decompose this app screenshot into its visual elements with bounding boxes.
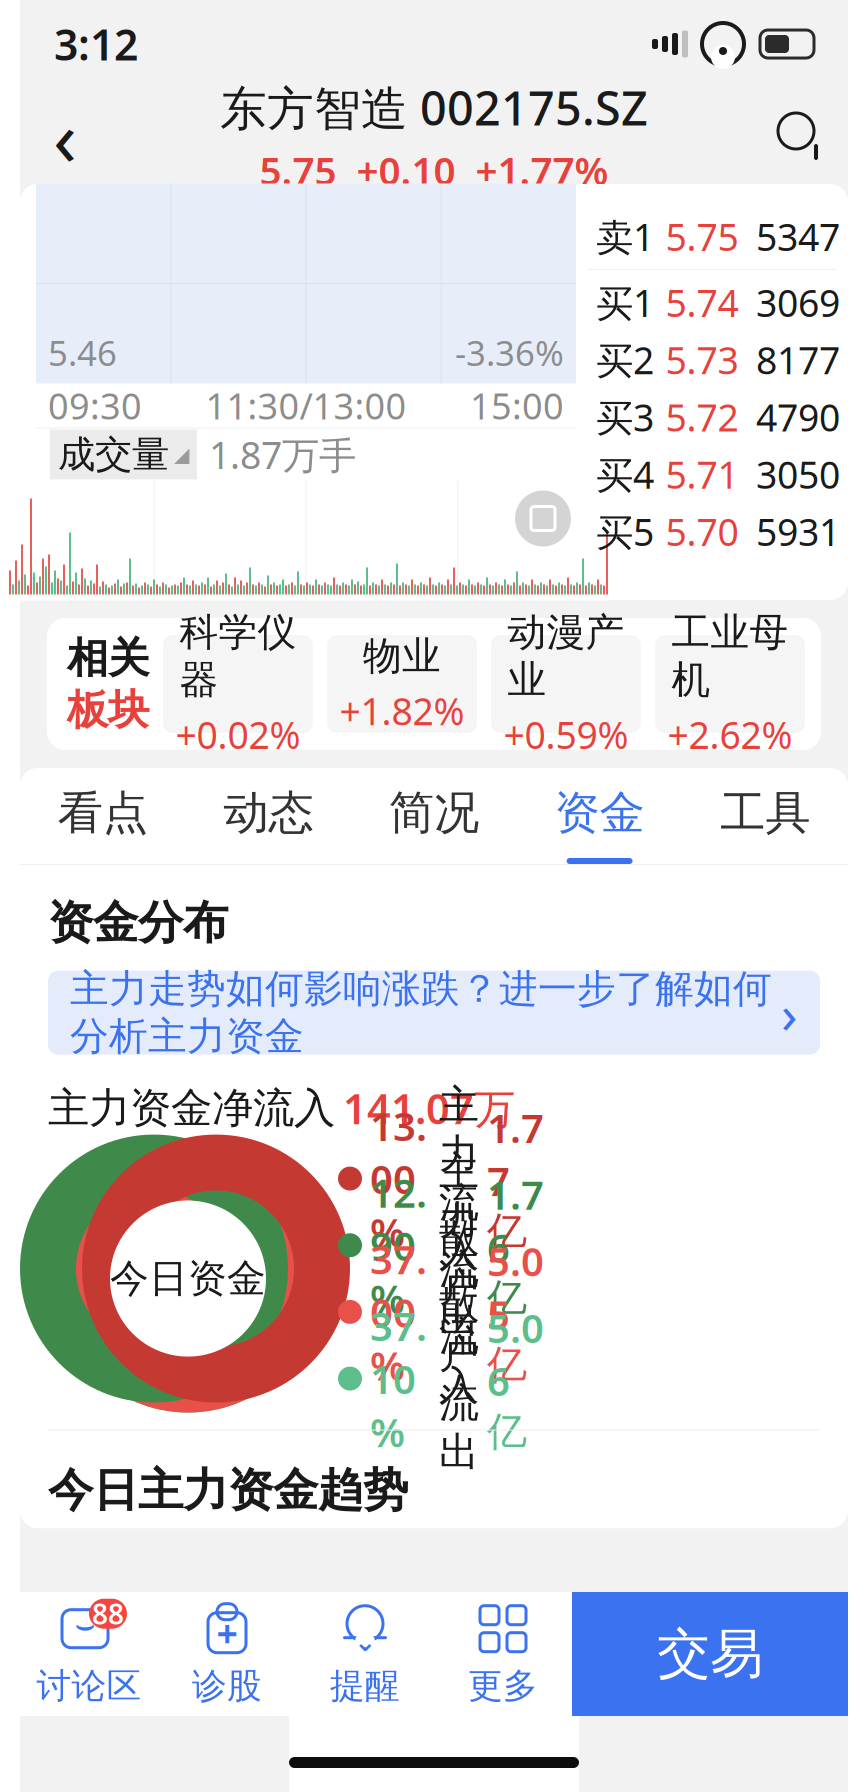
staticText: 交易 [657,1621,763,1687]
staticText: ⌣ [74,1610,95,1641]
staticText: 散户流入 [439,1214,479,1410]
staticText: 买1 [596,278,654,327]
staticText: 今日主力资金趋势 [48,1463,408,1518]
staticText: +1.82% [339,686,464,736]
button[interactable]: 返回 [20,91,110,181]
staticText: 5.71 [665,449,738,499]
button[interactable]: 动态 [186,768,351,864]
button[interactable]: 动漫产业 [491,635,641,733]
staticText: 资金分布 [48,895,228,951]
staticText: 成交量 [58,432,169,477]
staticText: 简况 [389,785,479,841]
staticText: 诊股 [192,1665,262,1707]
staticText: 卖1 [596,212,654,261]
button[interactable]: 主力走势如何影响涨跌？进一步了解如何分析主力资金 [48,971,820,1055]
staticText: 5.75 [665,212,738,261]
staticText: 5.46 [48,329,117,375]
staticText: 5.72 [665,392,738,442]
staticText: › [781,977,798,1048]
staticText: 4790 [756,392,840,442]
staticText: +2.62% [667,710,792,759]
staticText: 5.73 [665,335,738,384]
staticText: 物业 [363,632,441,680]
button[interactable]: 更多 [434,1592,572,1716]
button[interactable]: 工业母机 [655,635,805,733]
staticText: 主力走势如何影响涨跌？进一步了解如何分析主力资金 [70,965,772,1060]
button[interactable]: + [158,1592,296,1716]
staticText: 动态 [223,785,313,841]
staticText: 88 [92,1595,124,1632]
staticText: 看点 [58,785,148,841]
staticText: + [216,1608,237,1657]
staticText: 8177 [756,335,840,384]
staticText: 5.74 [665,278,738,327]
staticText: 散户流出 [439,1280,479,1477]
staticText: 37.10% [370,1299,427,1458]
staticText: 工具 [720,785,810,841]
button[interactable]: 看点 [20,768,186,864]
staticText: 动漫产业 [507,609,624,704]
staticText: ‹ [53,85,77,187]
staticText: 买2 [596,335,654,384]
staticText: 1.77亿 [487,1101,544,1256]
staticText: 主力流出 [439,1147,479,1343]
staticText: 主力流入 [439,1080,479,1277]
staticText: 3069 [756,278,840,327]
staticText: 37.00% [370,1232,427,1392]
staticText: 1.87万手 [209,430,356,479]
staticText: 11:30/13:00 [205,382,406,429]
button[interactable]: 科学仪器 [163,635,313,733]
button[interactable]: 全屏 [515,490,571,546]
staticText: 15:00 [470,382,564,429]
button[interactable]: 简况 [351,768,517,864]
staticText: 板块 [67,684,149,735]
staticText: 更多 [468,1665,538,1707]
staticText: 3:12 [54,16,138,72]
button[interactable]: 工具 [682,768,848,864]
staticText: 5347 [756,212,840,261]
staticText: 13.00% [370,1099,427,1258]
button[interactable]: 物业 [327,635,477,733]
staticText: +0.59% [503,710,628,759]
staticText: 5.06亿 [487,1301,544,1456]
staticText: 3050 [756,449,840,499]
staticText: 1.76亿 [487,1168,544,1323]
staticText: 资金 [555,785,645,841]
staticText: 5.70 [665,507,738,556]
staticText: 讨论区 [36,1665,141,1707]
staticText: 09:30 [48,382,142,429]
button[interactable]: 交易 [572,1592,848,1716]
staticText: 科学仪器 [179,609,296,704]
staticText: 提醒 [330,1665,400,1707]
staticText: 相关 [67,633,149,683]
staticText: ⌄ [354,1627,376,1657]
staticText: 5.75 +0.10 +1.77% [259,144,608,196]
staticText: 买5 [596,507,654,556]
button[interactable]: ⌣ [20,1592,158,1716]
staticText: 5.05亿 [487,1234,544,1390]
staticText: 今日资金 [110,1255,266,1302]
staticText: 12.90% [370,1166,427,1325]
staticText: ◢ [174,443,189,466]
staticText: 买3 [596,392,654,442]
staticText: 主力资金净流入 [48,1083,335,1133]
staticText: 工业母机 [671,609,788,704]
staticText: -3.36% [455,329,564,375]
staticText: 东方智造 002175.SZ [220,76,648,138]
button[interactable]: 搜索 [756,91,846,181]
button[interactable]: ⌄ [296,1592,434,1716]
staticText: +0.02% [175,710,300,759]
staticText: 买4 [596,449,654,499]
button[interactable]: 资金 [517,768,682,864]
staticText: 5931 [756,507,840,556]
staticText: 141.07万 [343,1081,515,1136]
